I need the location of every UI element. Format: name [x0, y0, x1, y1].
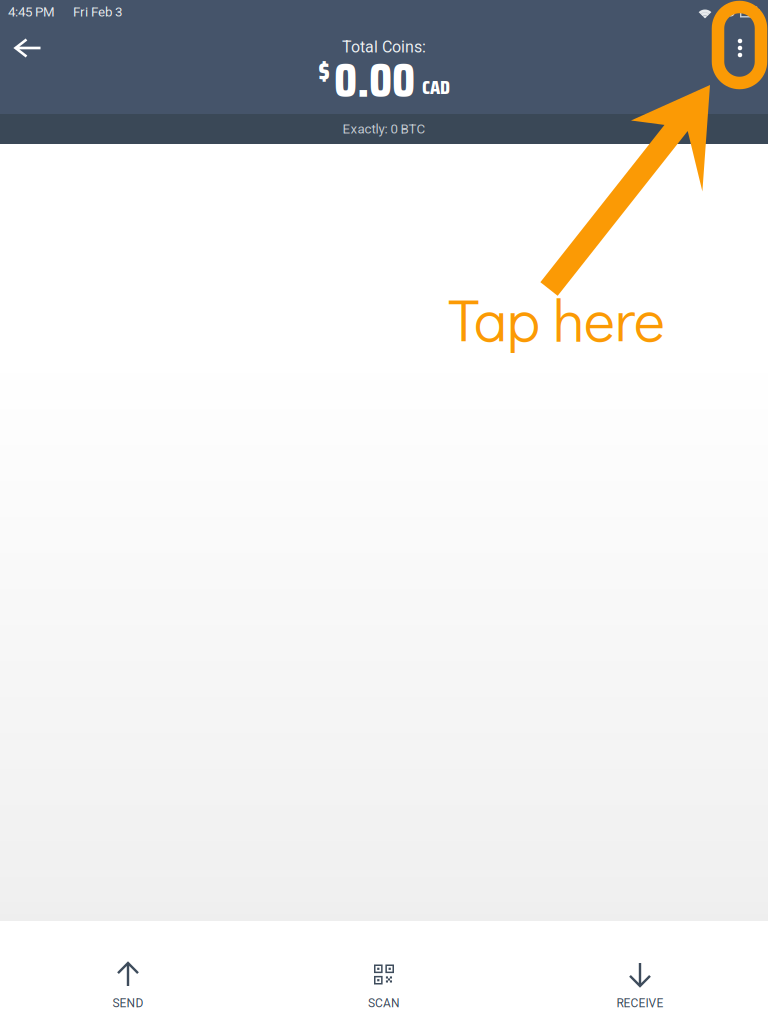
staticText: RECEIVE — [616, 996, 663, 1010]
staticText: SCAN — [368, 996, 400, 1010]
staticText: 4:45 PM — [8, 4, 55, 20]
button[interactable]: Back — [0, 3, 56, 93]
staticText: SEND — [112, 996, 143, 1010]
button[interactable]: RECEIVE — [512, 921, 768, 1024]
staticText: Fri Feb 3 — [73, 4, 122, 20]
button[interactable]: SCAN — [256, 921, 512, 1024]
staticText: Total Coins: — [342, 38, 426, 56]
staticText: 19 — [721, 4, 735, 20]
staticText: 0.00 — [334, 42, 415, 118]
staticText: Tap here — [448, 280, 665, 357]
button[interactable]: SEND — [0, 921, 256, 1024]
button[interactable]: More options — [712, 3, 768, 93]
staticText: $ — [318, 48, 330, 94]
staticText: Exactly: 0 BTC — [342, 121, 425, 137]
staticText: CAD — [422, 71, 450, 103]
